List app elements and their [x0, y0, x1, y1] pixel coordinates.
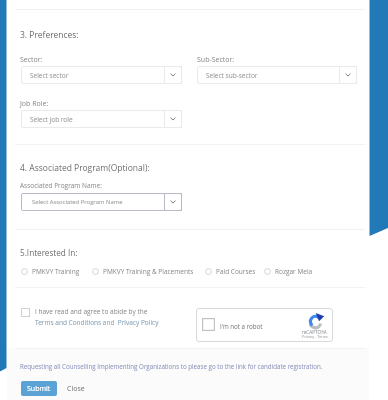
- staticText: Terms and Conditions and Privacy Policy: [35, 318, 159, 327]
- staticText: Associated Program Name:: [20, 181, 102, 190]
- staticText: Requesting all Counselling Implementing …: [20, 362, 323, 370]
- staticText: Select sub-sector: [206, 71, 258, 80]
- staticText: Select job role: [30, 115, 73, 124]
- staticText: Submit: [27, 384, 51, 394]
- button[interactable]: Select sub-sector: [197, 66, 357, 84]
- button[interactable]: Select sector: [21, 66, 182, 84]
- staticText: Close: [67, 384, 85, 394]
- staticText: reCAPTCHA: [302, 329, 327, 335]
- staticText: Privacy - Terms: [302, 334, 328, 339]
- button[interactable]: Submit: [21, 381, 57, 396]
- staticText: Sub-Sector:: [197, 55, 235, 65]
- button[interactable]: Paid Courses: [205, 267, 256, 276]
- staticText: Rozgar Mela: [275, 267, 313, 276]
- staticText: Sector:: [20, 55, 43, 65]
- staticText: I'm not a robot: [220, 322, 263, 330]
- staticText: Job Role:: [20, 99, 49, 109]
- button[interactable]: PMKVY Training & Placements: [92, 267, 194, 276]
- button[interactable]: Select Associated Program Name: [21, 193, 182, 211]
- staticText: I have read and agree to abide by the: [35, 307, 148, 316]
- staticText: 5.Interested In:: [20, 247, 78, 258]
- staticText: 3. Preferences:: [20, 29, 79, 41]
- button[interactable]: Select job role: [21, 110, 182, 128]
- staticText: Select Associated Program Name: [32, 198, 123, 206]
- staticText: PMKVY Training: [32, 267, 80, 276]
- button[interactable]: I have read and agree to abide by the: [21, 307, 159, 327]
- staticText: PMKVY Training & Placements: [103, 267, 194, 276]
- staticText: Select sector: [30, 71, 69, 80]
- staticText: 4. Associated Program(Optional):: [20, 162, 150, 174]
- staticText: Paid Courses: [216, 267, 256, 276]
- button[interactable]: Rozgar Mela: [264, 267, 313, 276]
- button[interactable]: I'm not a robot: [196, 308, 333, 342]
- button[interactable]: PMKVY Training: [21, 267, 80, 276]
- button[interactable]: Close: [61, 381, 90, 396]
